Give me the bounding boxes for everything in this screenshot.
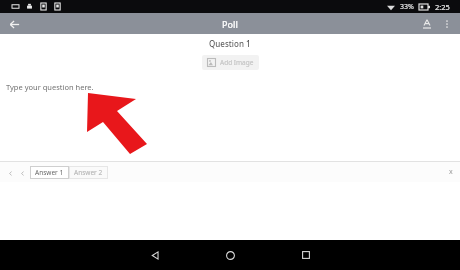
- staticText: Answer 1: [35, 168, 64, 177]
- staticText: 33%: [400, 2, 414, 12]
- staticText: Add Image: [220, 58, 254, 67]
- button[interactable]: Back: [118, 240, 193, 270]
- button[interactable]: Answer 2: [69, 166, 108, 179]
- staticText: Type your question here.: [6, 82, 94, 92]
- button[interactable]: More options: [437, 14, 457, 34]
- button[interactable]: Home: [193, 240, 268, 270]
- staticText: 2:25: [435, 2, 450, 12]
- staticText: Answer 2: [74, 168, 103, 177]
- button[interactable]: Add Image: [202, 55, 259, 70]
- button[interactable]: Previous answer: [4, 167, 16, 179]
- button[interactable]: Next answer: [16, 167, 28, 179]
- button[interactable]: Answer 1: [30, 166, 69, 179]
- button[interactable]: Text format: [417, 14, 437, 34]
- button[interactable]: Back: [5, 15, 23, 33]
- staticText: Poll: [222, 18, 238, 30]
- button[interactable]: Remove answer: [445, 166, 457, 178]
- staticText: x: [449, 167, 453, 177]
- button[interactable]: Recent apps: [268, 240, 343, 270]
- staticText: Question 1: [209, 38, 251, 49]
